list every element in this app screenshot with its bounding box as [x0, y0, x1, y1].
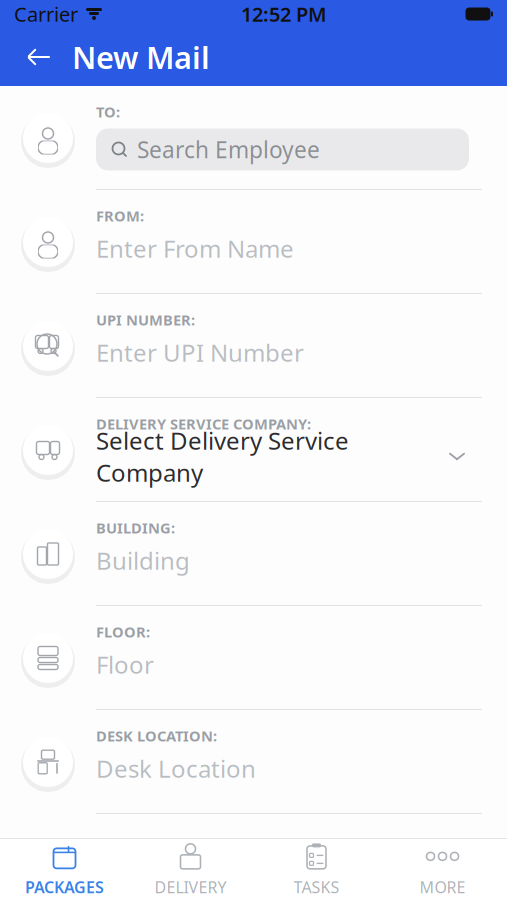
button[interactable]: DELIVERY	[127, 839, 253, 899]
staticText: Enter UPI Number	[96, 336, 304, 368]
button[interactable]: PACKAGES	[1, 839, 127, 899]
button[interactable]: BUILDING:	[0, 502, 507, 606]
button[interactable]: DESK LOCATION:	[0, 710, 507, 814]
staticText: Desk Location	[96, 752, 256, 784]
staticText: New Mail	[72, 37, 210, 77]
staticText: PACKAGES	[25, 876, 104, 898]
button[interactable]: MORE	[379, 839, 505, 899]
button[interactable]: UPI NUMBER:	[0, 294, 507, 398]
button[interactable]: FROM:	[0, 190, 507, 294]
button[interactable]: TO:	[0, 86, 507, 190]
button[interactable]: Back	[16, 34, 62, 80]
staticText: 12:52 PM	[241, 1, 327, 27]
staticText: FLOOR:	[96, 622, 150, 641]
staticText: Floor	[96, 648, 154, 680]
button[interactable]: TASKS	[253, 839, 379, 899]
staticText: Carrier	[14, 1, 78, 27]
staticText: Enter From Name	[96, 232, 294, 264]
staticText: UPI NUMBER:	[96, 310, 195, 329]
staticText: DESK LOCATION:	[96, 726, 217, 745]
staticText: DELIVERY SERVICE COMPANY:	[96, 414, 311, 433]
staticText: FROM:	[96, 206, 144, 225]
staticText: Building	[96, 544, 190, 576]
staticText: MORE	[419, 876, 465, 898]
button[interactable]: FLOOR:	[0, 606, 507, 710]
staticText: BUILDING:	[96, 518, 175, 537]
staticText: TASKS	[293, 876, 339, 898]
staticText: Select Delivery Service Company	[96, 425, 349, 488]
staticText: DELIVERY	[154, 876, 226, 898]
staticText: TO:	[96, 102, 120, 121]
button[interactable]: DELIVERY SERVICE COMPANY:	[0, 398, 507, 502]
staticText: Search Employee	[137, 134, 320, 164]
